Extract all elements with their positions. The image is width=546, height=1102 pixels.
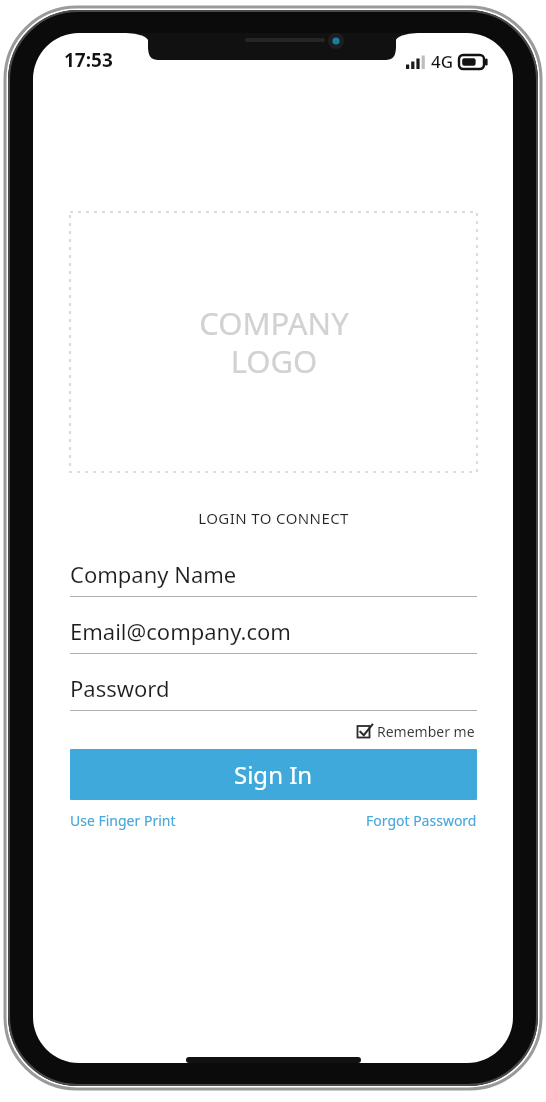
button[interactable]: Use Finger Print — [70, 811, 176, 830]
button[interactable]: Forgot Password — [366, 811, 477, 830]
button[interactable]: Email@company.com — [70, 616, 477, 654]
button[interactable]: Password — [70, 673, 477, 711]
button[interactable]: Remember me — [355, 720, 477, 743]
staticText: Company Name — [70, 559, 237, 589]
staticText: 4G — [431, 50, 454, 73]
staticText: Sign In — [234, 758, 313, 791]
button[interactable]: Sign In — [70, 749, 477, 800]
staticText: LOGIN TO CONNECT — [70, 508, 477, 528]
staticText: Email@company.com — [70, 616, 291, 646]
button[interactable]: Company Name — [70, 559, 477, 597]
staticText: Password — [70, 673, 170, 703]
staticText: 17:53 — [64, 47, 113, 73]
staticText: Remember me — [377, 722, 475, 741]
staticText: COMPANY LOGO — [199, 302, 349, 382]
